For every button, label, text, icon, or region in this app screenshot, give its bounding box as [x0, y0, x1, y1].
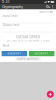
staticText: Shift each letter a fixed number of plac…	[6, 39, 49, 42]
button[interactable]: New cipher	[45, 89, 56, 100]
staticText: Cryptography	[2, 5, 23, 9]
button[interactable]: Uppercase	[39, 10, 54, 13]
button[interactable]: DECRYPT	[29, 51, 54, 56]
staticText: 12:30	[2, 0, 10, 4]
button[interactable]: ENCRYPT	[2, 51, 27, 56]
button[interactable]: More options	[50, 5, 55, 9]
staticText: Shift	[2, 44, 9, 48]
staticText: DECRYPT	[35, 52, 49, 55]
button[interactable]: COPY OUTPUT	[15, 57, 40, 61]
staticText: Output text	[2, 23, 19, 27]
staticText: ENCRYPT	[7, 52, 21, 55]
button[interactable]: Cipher key	[46, 5, 50, 9]
staticText: Input text	[2, 14, 17, 18]
staticText: Uppercase	[39, 10, 54, 13]
staticText: COPY OUTPUT	[17, 57, 38, 60]
staticText: CAESAR CIPHER	[16, 36, 40, 39]
